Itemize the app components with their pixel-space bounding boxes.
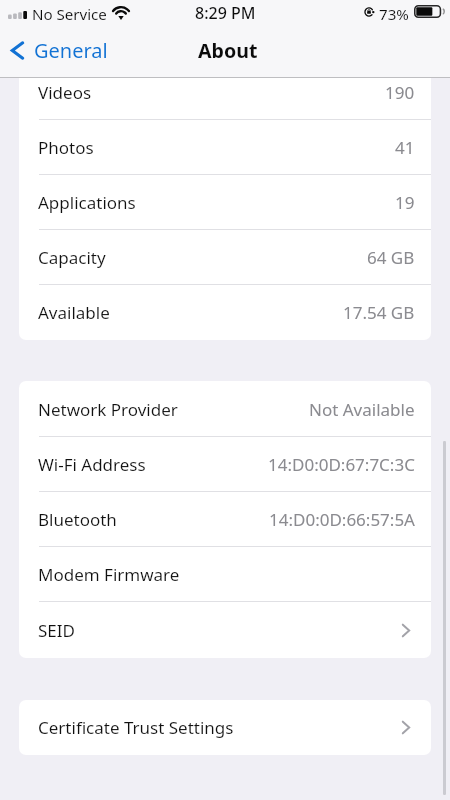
staticText: Available — [38, 301, 110, 324]
button[interactable]: Wi-Fi Address — [19, 437, 431, 492]
staticText: 17.54 GB — [343, 301, 415, 324]
button[interactable]: Network Provider — [19, 381, 431, 437]
staticText: 14:D0:0D:66:57:5A — [269, 508, 415, 531]
staticText: 14:D0:0D:67:7C:3C — [268, 453, 415, 476]
staticText: Applications — [38, 191, 136, 214]
button[interactable]: Modem Firmware — [19, 547, 431, 602]
button[interactable]: Back to General — [0, 32, 118, 69]
button[interactable]: Bluetooth — [19, 492, 431, 547]
staticText: Wi-Fi Address — [38, 453, 146, 476]
staticText: Not Available — [309, 398, 415, 421]
button[interactable]: SEID — [19, 602, 431, 658]
staticText: Network Provider — [38, 398, 178, 421]
button[interactable]: Applications — [19, 175, 431, 230]
staticText: 73% — [379, 4, 409, 25]
staticText: Photos — [38, 136, 94, 159]
button[interactable]: Capacity — [19, 230, 431, 285]
button[interactable]: Certificate Trust Settings — [19, 700, 431, 755]
staticText: Bluetooth — [38, 508, 117, 531]
staticText: 64 GB — [367, 246, 415, 269]
staticText: 8:29 PM — [195, 2, 256, 24]
button[interactable]: Photos — [19, 120, 431, 175]
staticText: Capacity — [38, 246, 106, 269]
staticText: Modem Firmware — [38, 563, 180, 586]
staticText: SEID — [38, 619, 75, 642]
staticText: Certificate Trust Settings — [38, 716, 234, 739]
staticText: 190 — [385, 81, 415, 104]
button[interactable]: Available — [19, 285, 431, 340]
staticText: General — [34, 37, 108, 64]
staticText: 41 — [395, 136, 415, 159]
staticText: No Service — [32, 4, 107, 25]
staticText: Videos — [38, 81, 92, 104]
staticText: About — [198, 37, 258, 64]
button[interactable]: Videos — [19, 65, 431, 120]
staticText: 19 — [395, 191, 415, 214]
